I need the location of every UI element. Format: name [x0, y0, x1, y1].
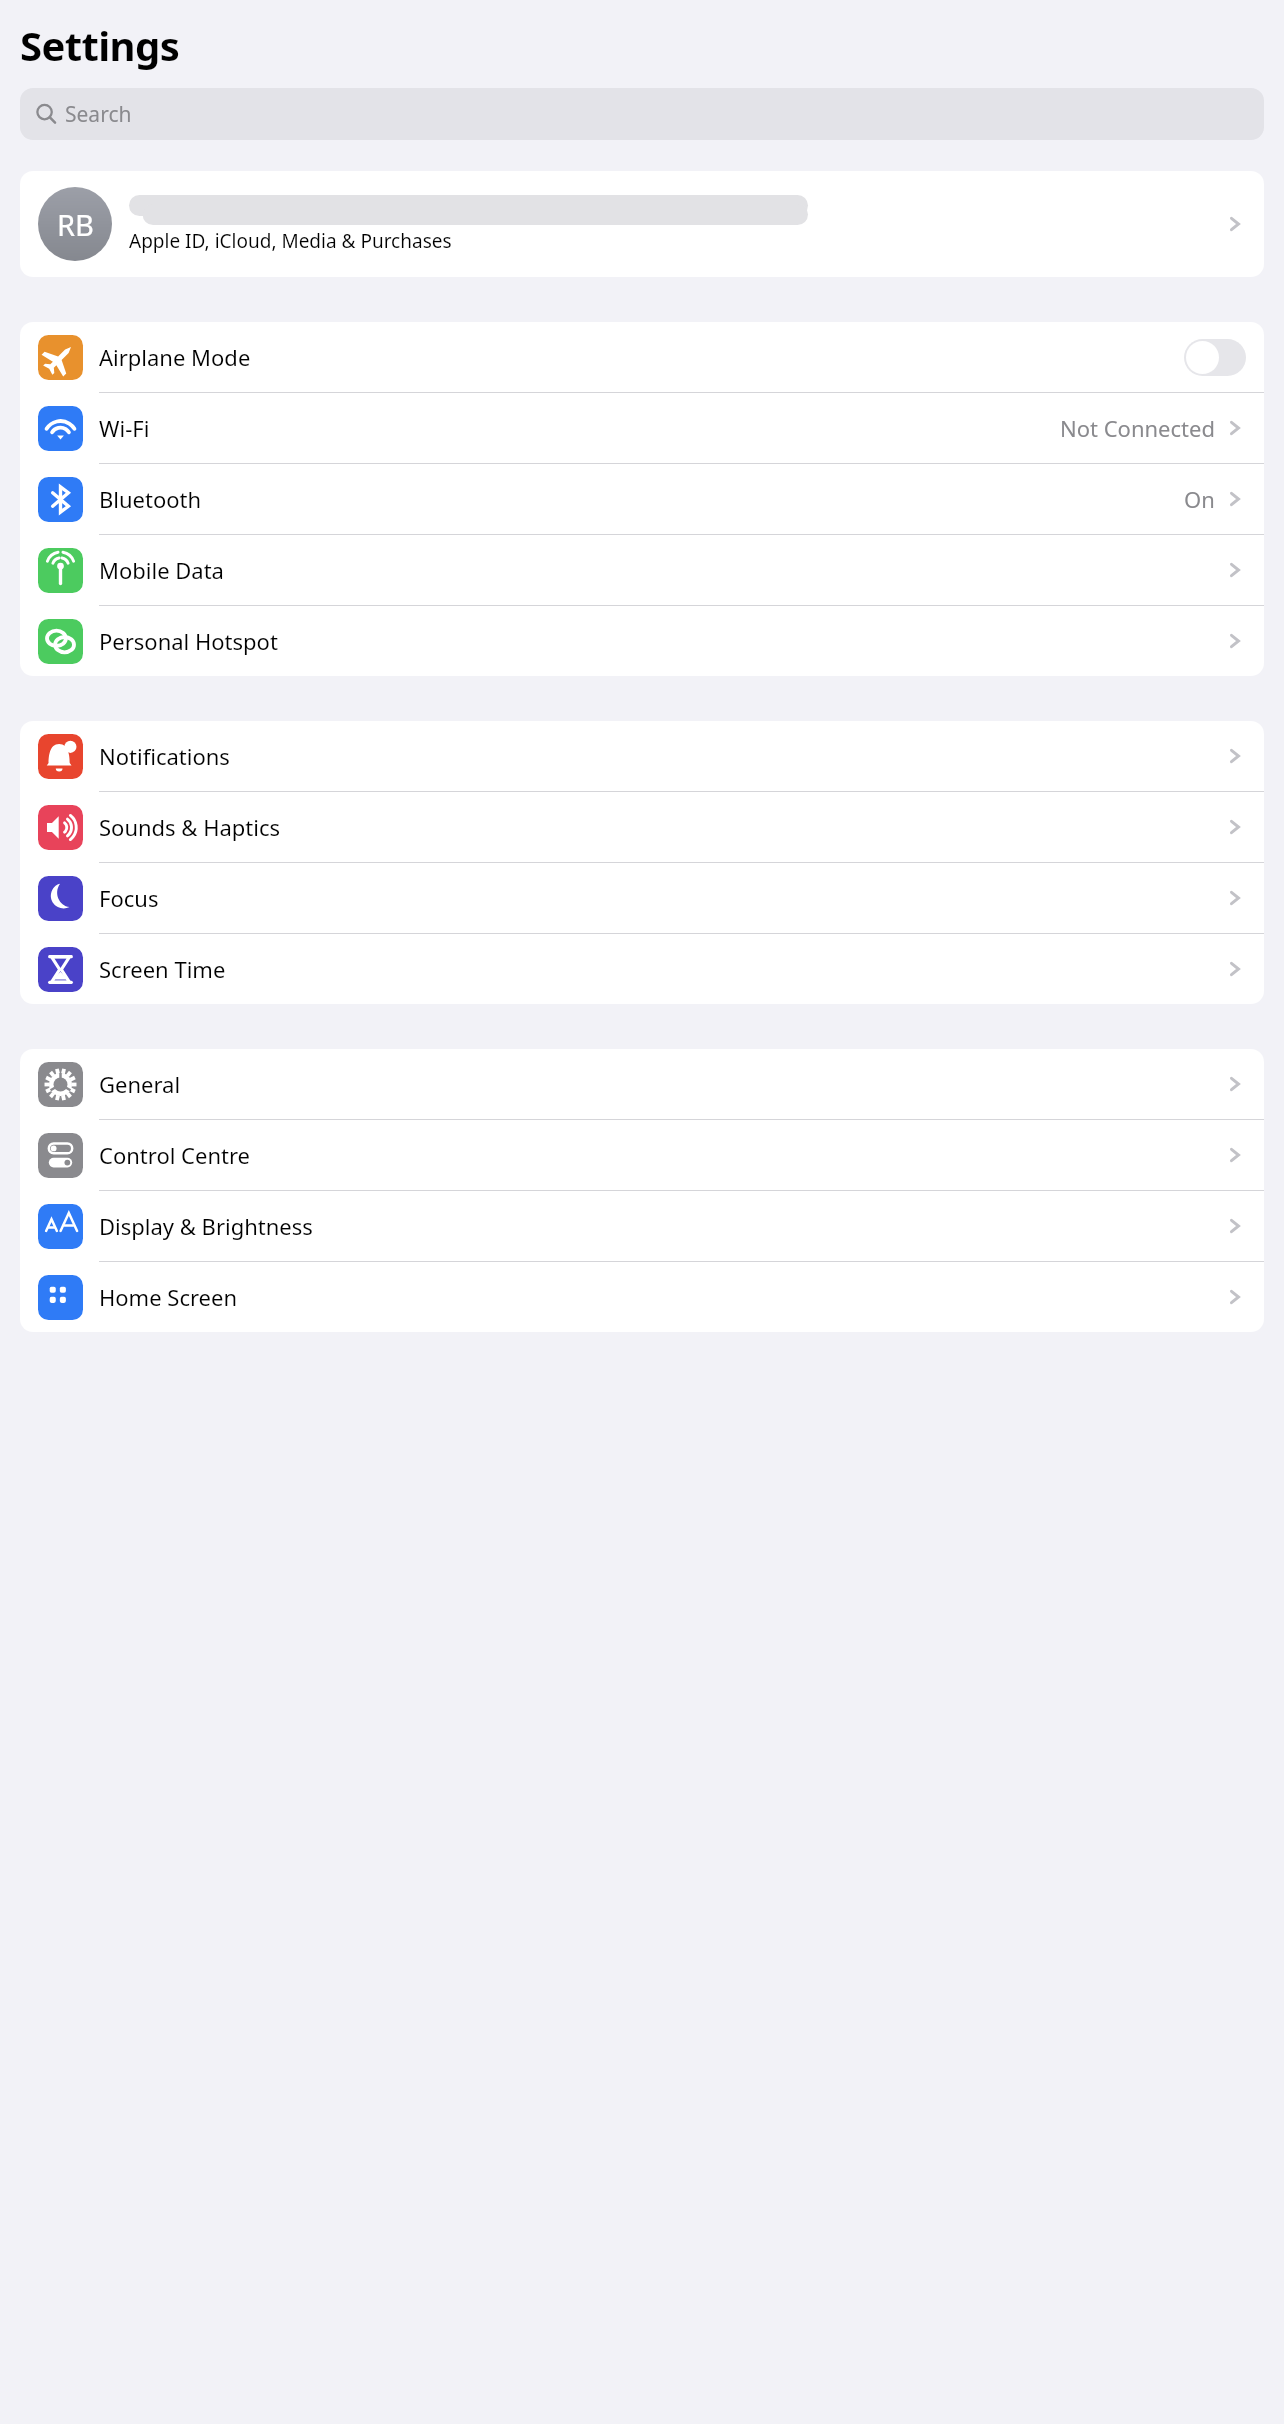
button[interactable]: Personal Hotspot: [20, 606, 1264, 676]
button[interactable]: Notifications: [20, 721, 1264, 792]
staticText: Mobile Data: [99, 555, 1224, 585]
staticText: Sounds & Haptics: [99, 812, 1224, 842]
button[interactable]: Airplane Mode: [20, 322, 1264, 393]
button[interactable]: Search: [20, 88, 1264, 140]
button[interactable]: General: [20, 1049, 1264, 1120]
staticText: Notifications: [99, 741, 1224, 771]
staticText: General: [99, 1069, 1224, 1099]
button[interactable]: Display & Brightness: [20, 1191, 1264, 1262]
staticText: Settings: [20, 18, 180, 72]
staticText: Screen Time: [99, 954, 1224, 984]
button[interactable]: Home Screen: [20, 1262, 1264, 1332]
staticText: Airplane Mode: [99, 342, 1184, 372]
staticText: Display & Brightness: [99, 1211, 1224, 1241]
staticText: Personal Hotspot: [99, 626, 1224, 656]
button[interactable]: RB: [20, 171, 1264, 277]
staticText: RB: [57, 205, 94, 244]
button[interactable]: Bluetooth: [20, 464, 1264, 535]
staticText: Search: [65, 100, 132, 129]
staticText: Wi-Fi: [99, 413, 1060, 443]
staticText: Not Connected: [1060, 413, 1215, 443]
staticText: Home Screen: [99, 1282, 1224, 1312]
button[interactable]: Wi-Fi: [20, 393, 1264, 464]
staticText: Apple ID, iCloud, Media & Purchases: [129, 228, 452, 254]
button[interactable]: Screen Time: [20, 934, 1264, 1004]
button[interactable]: Focus: [20, 863, 1264, 934]
staticText: Control Centre: [99, 1140, 1224, 1170]
button[interactable]: Sounds & Haptics: [20, 792, 1264, 863]
button[interactable]: Mobile Data: [20, 535, 1264, 606]
button[interactable]: Control Centre: [20, 1120, 1264, 1191]
staticText: Bluetooth: [99, 484, 1184, 514]
staticText: Focus: [99, 883, 1224, 913]
staticText: On: [1184, 484, 1215, 514]
